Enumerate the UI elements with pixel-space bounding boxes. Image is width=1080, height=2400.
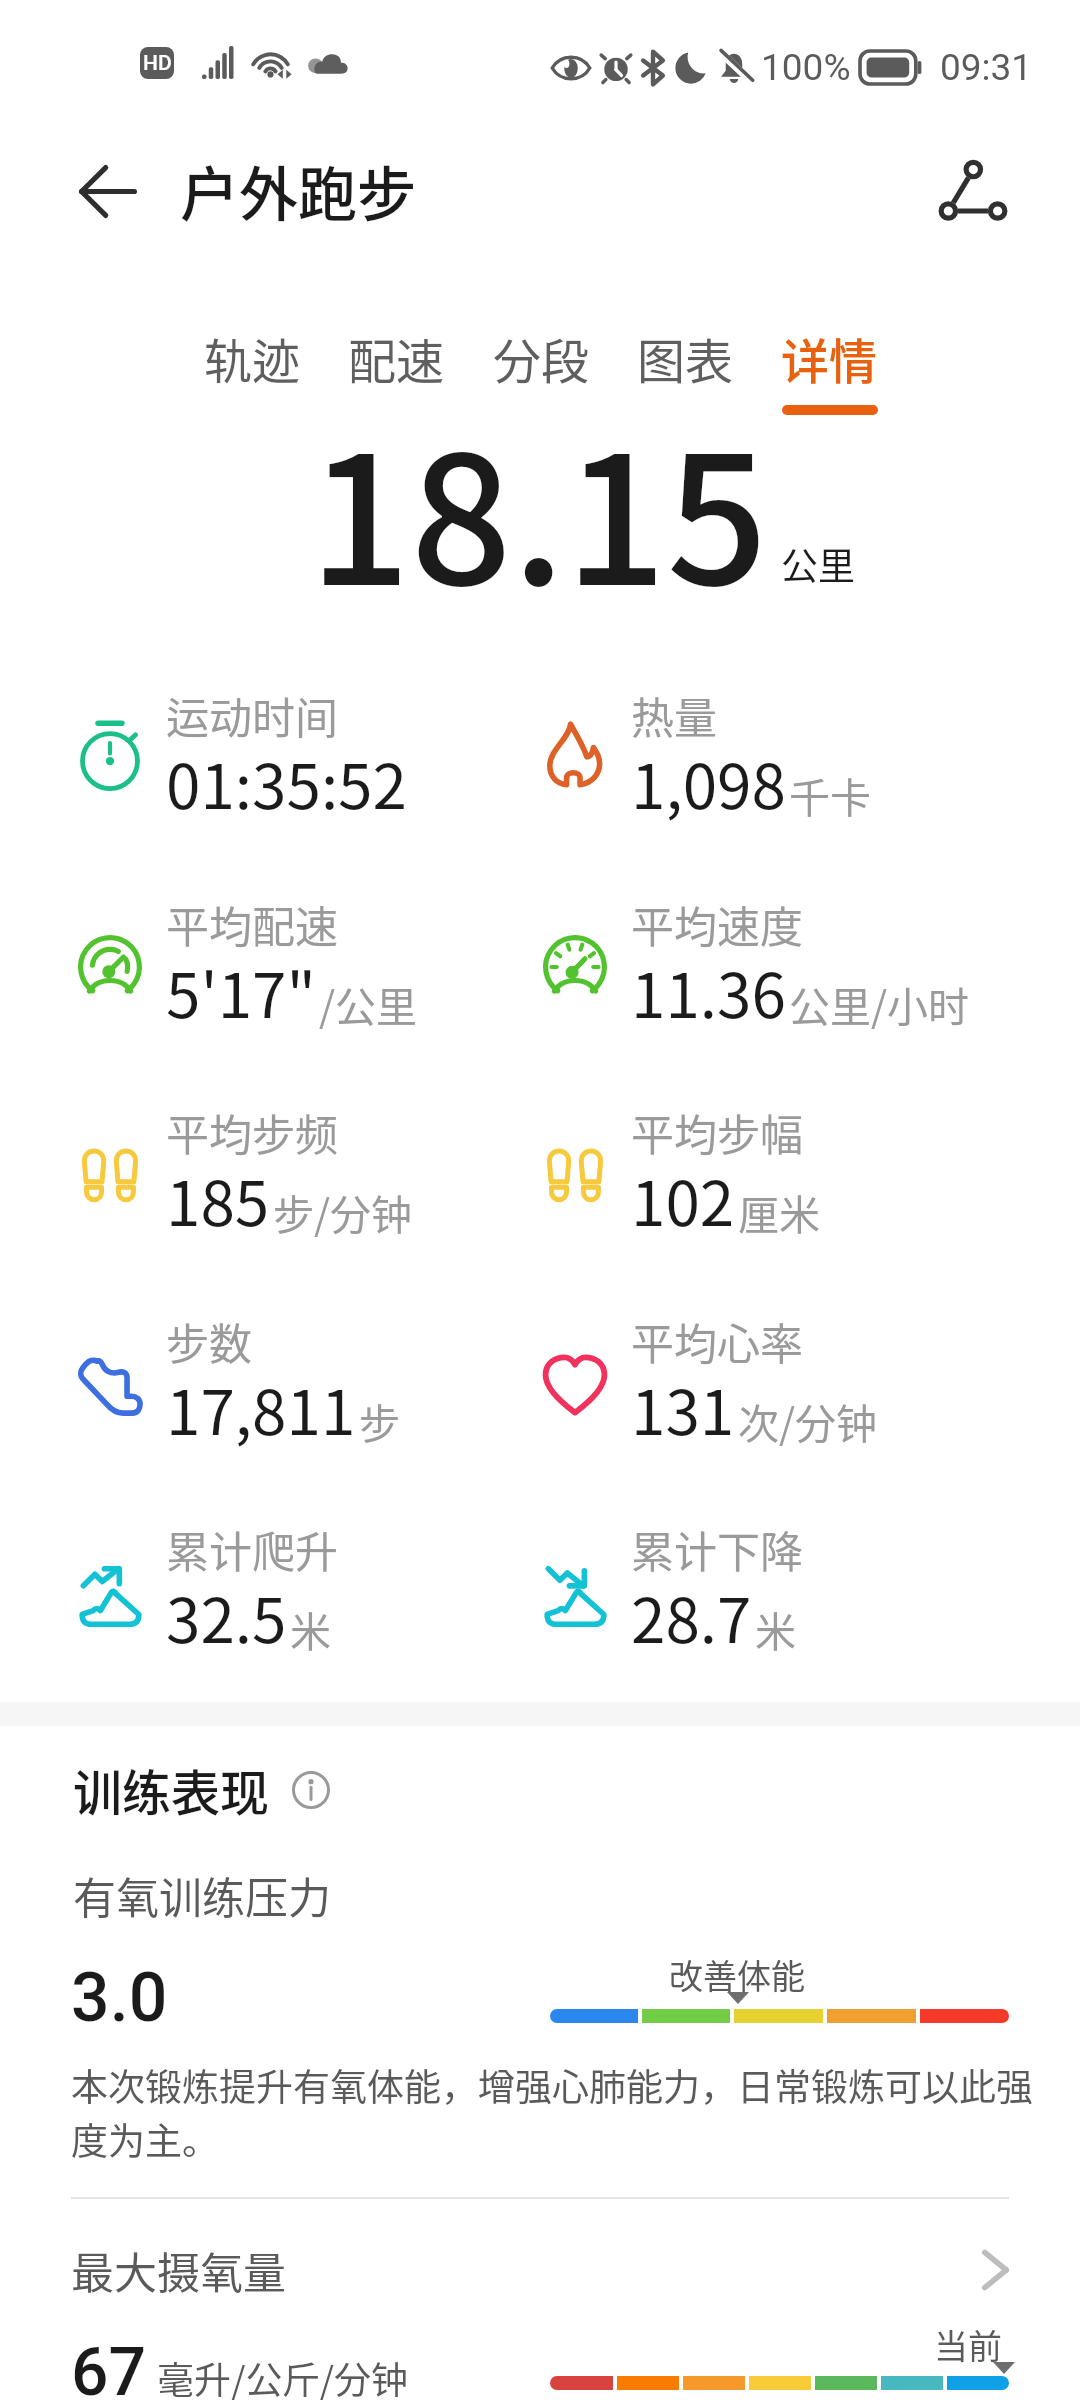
staticText: 训练表现 bbox=[73, 1754, 270, 1825]
staticText: 累计爬升 bbox=[166, 1518, 338, 1580]
staticText: 户外跑步 bbox=[180, 148, 417, 233]
staticText: 米 bbox=[755, 1599, 796, 1658]
staticText: 当前 bbox=[934, 2320, 1002, 2369]
staticText: 累计下降 bbox=[631, 1518, 803, 1580]
staticText: 平均心率 bbox=[631, 1310, 803, 1372]
staticText: 28.7 bbox=[631, 1571, 752, 1661]
staticText: 100% bbox=[761, 46, 851, 89]
button[interactable]: 图表 bbox=[637, 323, 734, 393]
staticText: 热量 bbox=[631, 684, 717, 746]
staticText: 平均配速 bbox=[166, 893, 338, 955]
staticText: 平均步幅 bbox=[631, 1101, 803, 1163]
staticText: 运动时间 bbox=[166, 684, 338, 746]
staticText: 最大摄氧量 bbox=[71, 2239, 286, 2301]
staticText: 公里/小时 bbox=[789, 974, 970, 1033]
staticText: 配速 bbox=[348, 323, 445, 393]
button[interactable]: 分段 bbox=[493, 323, 590, 393]
staticText: 千卡 bbox=[789, 765, 871, 824]
button[interactable]: Share bbox=[925, 147, 1020, 235]
staticText: 17,811 bbox=[166, 1363, 356, 1453]
staticText: 步/分钟 bbox=[273, 1182, 413, 1241]
staticText: 1,098 bbox=[631, 737, 786, 827]
button[interactable]: 详情 bbox=[781, 323, 878, 415]
staticText: 公里 bbox=[781, 537, 855, 591]
staticText: 有氧训练压力 bbox=[73, 1864, 331, 1926]
staticText: 详情 bbox=[781, 323, 878, 393]
staticText: 11.36 bbox=[631, 946, 786, 1036]
button[interactable]: 轨迹 bbox=[204, 323, 301, 393]
staticText: 米 bbox=[290, 1599, 331, 1658]
staticText: 185 bbox=[166, 1154, 270, 1244]
staticText: 平均速度 bbox=[631, 893, 803, 955]
staticText: 102 bbox=[631, 1154, 735, 1244]
staticText: 本次锻炼提升有氧体能，增强心肺能力，日常锻炼可以此强度为主。 bbox=[71, 2058, 1061, 2166]
staticText: 毫升/公斤/分钟 bbox=[157, 2351, 409, 2400]
button[interactable]: Info bbox=[288, 1767, 334, 1813]
button[interactable]: 最大摄氧量 bbox=[71, 2239, 1009, 2301]
staticText: 32.5 bbox=[166, 1571, 287, 1661]
staticText: /公里 bbox=[319, 974, 418, 1033]
staticText: 平均步频 bbox=[166, 1101, 338, 1163]
staticText: 67 bbox=[71, 2334, 147, 2400]
staticText: 18.15 bbox=[309, 379, 768, 637]
button[interactable]: Back bbox=[58, 156, 158, 226]
staticText: 次/分钟 bbox=[738, 1391, 878, 1450]
button[interactable]: 配速 bbox=[348, 323, 445, 393]
staticText: 分段 bbox=[493, 323, 590, 393]
staticText: 5'17" bbox=[166, 946, 316, 1036]
staticText: 厘米 bbox=[738, 1182, 820, 1241]
staticText: 图表 bbox=[637, 323, 734, 393]
staticText: 步 bbox=[359, 1391, 400, 1450]
staticText: 轨迹 bbox=[204, 323, 301, 393]
staticText: HD bbox=[143, 51, 172, 76]
staticText: 改善体能 bbox=[669, 1950, 805, 1999]
staticText: 131 bbox=[631, 1363, 735, 1453]
staticText: 09:31 bbox=[940, 46, 1033, 89]
staticText: 步数 bbox=[166, 1310, 252, 1372]
staticText: 3.0 bbox=[71, 1958, 168, 2038]
staticText: 01:35:52 bbox=[166, 737, 407, 827]
